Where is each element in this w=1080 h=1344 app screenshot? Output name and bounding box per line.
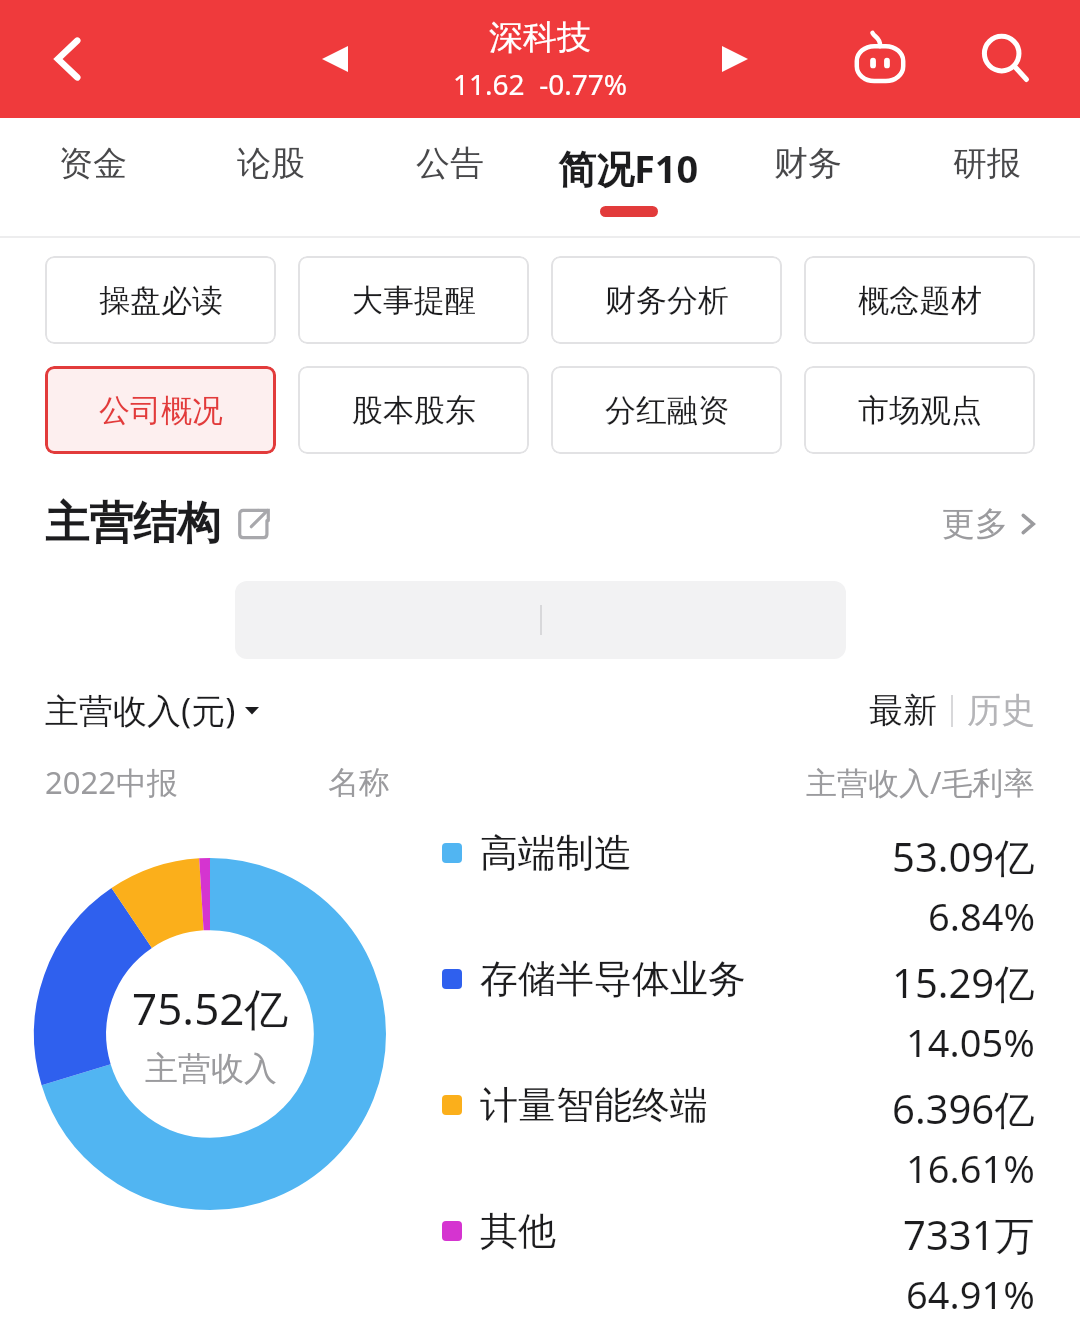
staticText: 15.29亿 (892, 955, 1035, 1010)
staticText: 概念题材 (858, 281, 982, 320)
staticText: 主营收入/毛利率 (806, 761, 1035, 803)
button[interactable]: 公司概况 (45, 366, 276, 454)
staticText: 操盘必读 (99, 281, 223, 320)
button[interactable]: 股本股东 (298, 366, 529, 454)
staticText: 7331万 (903, 1207, 1035, 1262)
staticText: 64.91% (906, 1268, 1035, 1320)
staticText: 股本股东 (352, 391, 476, 430)
button[interactable]: 概念题材 (804, 256, 1035, 344)
button[interactable]: 计量智能终端 (420, 1081, 1035, 1207)
staticText: 其他 (480, 1207, 556, 1255)
button[interactable]: 大事提醒 (298, 256, 529, 344)
staticText: 财务 (774, 142, 842, 185)
staticText: 主营收入 (145, 1048, 277, 1090)
button[interactable]: 高端制造 (420, 829, 1035, 955)
staticText: 名称 (328, 763, 390, 802)
button[interactable]: 公告 (360, 118, 539, 238)
button[interactable]: 其他 (420, 1207, 1035, 1333)
staticText: 6.84% (928, 890, 1035, 942)
staticText: 11.62 -0.77% (453, 65, 627, 103)
button[interactable]: 研报 (897, 118, 1076, 238)
button[interactable]: Search (966, 19, 1046, 99)
staticText: 主营收入(元) (45, 687, 236, 733)
button[interactable]: 论股 (182, 118, 360, 238)
button[interactable]: 主营收入(元) (45, 687, 262, 733)
staticText: 深科技 (489, 16, 591, 59)
button[interactable]: Next stock (700, 24, 770, 94)
button[interactable]: 资金 (4, 118, 182, 238)
button[interactable]: 历史 (967, 689, 1035, 732)
staticText: 分红融资 (605, 391, 729, 430)
button[interactable]: Back (34, 24, 104, 94)
staticText: 高端制造 (480, 829, 632, 877)
staticText: 6.396亿 (892, 1081, 1035, 1136)
other: Open detail (237, 507, 271, 541)
staticText: 大事提醒 (352, 281, 476, 320)
button[interactable]: 更多 (942, 503, 1040, 545)
staticText: 16.61% (906, 1142, 1035, 1194)
staticText: 2022中报 (45, 761, 178, 803)
staticText: 公告 (416, 142, 484, 185)
staticText: 简况F10 (558, 142, 699, 194)
button[interactable]: 财务分析 (551, 256, 782, 344)
staticText: 14.05% (906, 1016, 1035, 1068)
staticText: 资金 (59, 142, 127, 185)
button[interactable]: 市场观点 (804, 366, 1035, 454)
button[interactable]: 分红融资 (551, 366, 782, 454)
button[interactable]: AI assistant (840, 19, 920, 99)
staticText: 财务分析 (605, 281, 729, 320)
staticText: 市场观点 (858, 391, 982, 430)
button[interactable]: 财务 (718, 118, 897, 238)
button[interactable]: 存储半导体业务 (420, 955, 1035, 1081)
staticText: 研报 (953, 142, 1021, 185)
staticText: 最新 (869, 689, 937, 732)
button[interactable]: 主营结构 (45, 496, 271, 551)
staticText: 75.52亿 (132, 978, 289, 1038)
staticText: 论股 (237, 142, 305, 185)
staticText: 历史 (967, 689, 1035, 732)
button[interactable]: Previous stock (300, 24, 370, 94)
button[interactable]: 最新 (869, 689, 937, 732)
staticText: 公司概况 (99, 391, 223, 430)
staticText: 存储半导体业务 (480, 955, 746, 1003)
button[interactable]: 操盘必读 (45, 256, 276, 344)
staticText: 53.09亿 (892, 829, 1035, 884)
staticText: 计量智能终端 (480, 1081, 708, 1129)
staticText: 主营结构 (45, 496, 221, 551)
staticText: 更多 (942, 503, 1008, 545)
button[interactable]: 简况F10 (539, 118, 718, 238)
